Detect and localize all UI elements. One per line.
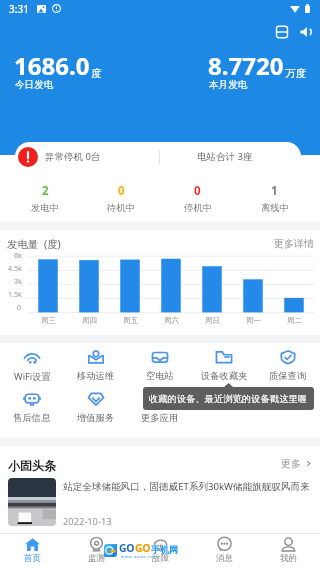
staticText: 2	[42, 183, 49, 199]
staticText: 质保查询	[269, 370, 307, 382]
staticText: 故障	[152, 553, 169, 564]
staticText: 离线中	[261, 202, 289, 214]
button[interactable]: 移动运维	[64, 350, 128, 382]
staticText: 站定全球储能风口，固德威ET系列30kW储能旗舰驭风而来	[63, 480, 310, 493]
staticText: 3k	[14, 277, 22, 287]
button[interactable]: 我的	[256, 533, 320, 568]
staticText: 1	[271, 183, 278, 199]
button[interactable]: Devices list	[272, 22, 292, 42]
staticText: 1686.0	[14, 49, 90, 82]
staticText: w w w . g o g o . c o m	[121, 554, 158, 558]
button[interactable]: 1	[236, 183, 313, 214]
staticText: 更多	[281, 457, 301, 470]
staticText: 8.7720	[208, 49, 284, 82]
staticText: 周二	[287, 316, 302, 325]
staticText: 万度	[285, 67, 306, 80]
staticText: 发电量 (度)	[7, 237, 61, 251]
staticText: 小固头条	[8, 458, 56, 473]
button[interactable]: 售后信息	[0, 392, 64, 424]
staticText: 发电中	[31, 202, 59, 214]
staticText: GO	[119, 541, 135, 555]
button[interactable]: 更多应用	[128, 392, 192, 424]
button[interactable]: 更多	[281, 457, 312, 470]
staticText: 更多应用	[141, 412, 179, 424]
staticText: 周三	[41, 316, 56, 325]
button[interactable]: 异常停机 0台	[15, 142, 301, 171]
staticText: 停机中	[184, 202, 212, 214]
staticText: 消息	[216, 553, 233, 564]
staticText: 周六	[164, 316, 179, 325]
button[interactable]: WiFi设置	[0, 350, 64, 383]
staticText: 移动运维	[77, 370, 115, 382]
staticText: 0	[118, 183, 125, 199]
staticText: 周一	[246, 316, 261, 325]
staticText: 电站合计 3座	[197, 150, 253, 163]
staticText: 售后信息	[13, 412, 51, 424]
button[interactable]: 质保查询	[256, 350, 320, 382]
staticText: 6k	[14, 251, 22, 261]
button[interactable]: Sound settings	[296, 22, 316, 42]
button[interactable]: 消息	[192, 533, 256, 568]
staticText: 1.5k	[8, 290, 22, 300]
staticText: 我的	[280, 553, 297, 564]
button[interactable]: 0	[83, 183, 159, 214]
staticText: 手机网	[151, 544, 178, 555]
button[interactable]: 故障	[128, 533, 192, 568]
button[interactable]: 站定全球储能风口，固德威ET系列30kW储能旗舰驭风而来	[0, 478, 320, 528]
staticText: 0	[17, 303, 22, 313]
button[interactable]: 2	[7, 183, 83, 214]
staticText: 0	[194, 183, 201, 199]
button[interactable]: 增值服务	[64, 392, 128, 424]
staticText: 增值服务	[77, 412, 115, 424]
staticText: 周四	[82, 316, 97, 325]
staticText: 本月发电	[209, 79, 248, 91]
staticText: 今日发电	[15, 79, 54, 91]
staticText: 3:31	[9, 2, 29, 16]
button[interactable]: 首页	[0, 533, 64, 568]
staticText: 空电站	[146, 370, 174, 382]
staticText: WiFi设置	[14, 370, 51, 383]
staticText: 收藏的设备、最近浏览的设备戳这里喔	[149, 393, 308, 405]
button[interactable]: 设备收藏夹	[192, 350, 256, 382]
button[interactable]: 空电站	[128, 350, 192, 382]
staticText: 周日	[205, 316, 220, 325]
staticText: 待机中	[107, 202, 135, 214]
staticText: 首页	[24, 553, 41, 564]
staticText: 异常停机 0台	[45, 150, 101, 163]
staticText: 度	[91, 67, 102, 80]
button[interactable]: 监测	[64, 533, 128, 568]
staticText: 周五	[123, 316, 138, 325]
staticText: 2022-10-13	[63, 515, 112, 528]
staticText: 4.5k	[8, 264, 22, 274]
staticText: 监测	[88, 553, 105, 564]
button[interactable]: 0	[159, 183, 236, 214]
staticText: 设备收藏夹	[201, 370, 248, 382]
staticText: GO	[135, 541, 151, 555]
button[interactable]: 更多详情	[274, 237, 314, 250]
